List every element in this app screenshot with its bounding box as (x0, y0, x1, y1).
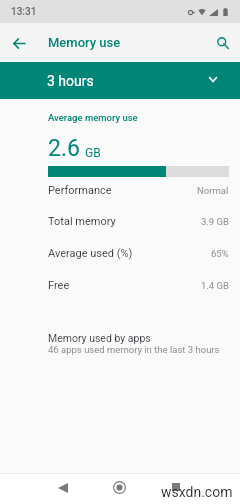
button[interactable]: Average used (%) (48, 238, 229, 268)
staticText: 2.6 (48, 135, 80, 162)
staticText: 13:31 (11, 6, 37, 18)
staticText: Total memory (48, 215, 116, 228)
staticText: 46 apps used memory in the last 3 hours (48, 344, 220, 355)
button[interactable]: Recents (161, 472, 191, 502)
staticText: Memory used by apps (48, 332, 151, 344)
button[interactable]: Performance (48, 175, 229, 205)
staticText: 3.9 GB (201, 216, 229, 227)
staticText: GB (85, 146, 101, 160)
button[interactable]: Search (210, 30, 236, 56)
button[interactable]: Free (48, 270, 229, 300)
staticText: 65% (211, 248, 229, 259)
staticText: wsxdn.com (161, 484, 233, 500)
staticText: Performance (48, 184, 112, 197)
staticText: 3 hours (47, 73, 94, 89)
staticText: 1.4 GB (201, 280, 229, 291)
staticText: Free (48, 279, 70, 292)
staticText: Average used (%) (48, 247, 133, 260)
staticText: Average memory use (48, 112, 138, 123)
button[interactable]: Home (104, 472, 134, 502)
button[interactable]: 3 hours (0, 62, 240, 99)
staticText: Memory use (48, 35, 121, 50)
button[interactable]: Back (48, 473, 78, 503)
staticText: Normal (197, 185, 229, 196)
button[interactable]: Total memory (48, 206, 229, 236)
button[interactable]: Navigate up (6, 30, 32, 56)
